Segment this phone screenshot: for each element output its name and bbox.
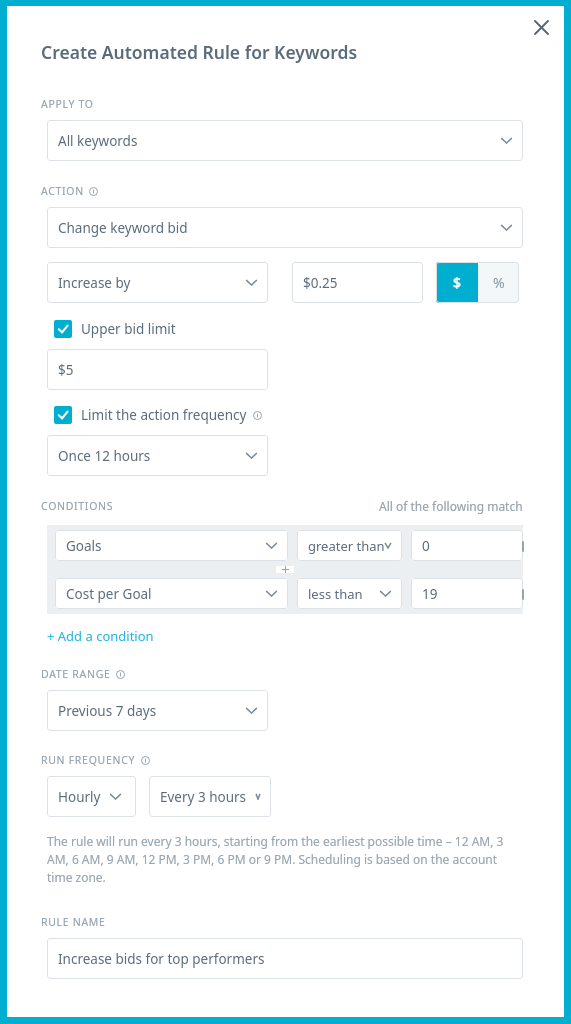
- staticText: Increase bids for top performers: [58, 950, 265, 968]
- button[interactable]: Hourly: [47, 776, 136, 817]
- button[interactable]: 0: [411, 530, 523, 561]
- staticText: 0: [422, 537, 430, 555]
- staticText: The rule will run every 3 hours, startin…: [47, 833, 519, 886]
- staticText: DATE RANGE: [41, 667, 111, 681]
- button[interactable]: All keywords: [47, 120, 523, 161]
- staticText: ACTION: [41, 184, 84, 198]
- staticText: APPLY TO: [41, 97, 94, 111]
- button[interactable]: 19: [411, 578, 523, 609]
- staticText: greater than: [308, 537, 385, 555]
- staticText: CONDITIONS: [41, 499, 114, 513]
- button[interactable]: Close: [528, 15, 554, 40]
- staticText: Hourly: [58, 788, 101, 806]
- staticText: RUN FREQUENCY: [41, 753, 136, 767]
- staticText: $: [453, 273, 462, 292]
- staticText: Every 3 hours: [160, 788, 247, 806]
- button[interactable]: Add condition: [276, 566, 294, 573]
- staticText: $5: [58, 361, 74, 379]
- staticText: 19: [422, 585, 438, 603]
- staticText: %: [493, 273, 505, 292]
- button[interactable]: Increase bids for top performers: [47, 938, 523, 979]
- staticText: Upper bid limit: [81, 320, 176, 338]
- staticText: $0.25: [303, 274, 338, 292]
- staticText: RULE NAME: [41, 915, 106, 929]
- button[interactable]: Increase by: [47, 262, 268, 303]
- button[interactable]: Goals: [55, 530, 288, 561]
- button[interactable]: Every 3 hours: [149, 776, 271, 817]
- staticText: Change keyword bid: [58, 219, 188, 237]
- staticText: Increase by: [58, 274, 131, 292]
- button[interactable]: greater than: [297, 530, 402, 561]
- button[interactable]: Change keyword bid: [47, 207, 523, 248]
- button[interactable]: Limit the action frequency: [54, 406, 262, 424]
- staticText: Create Automated Rule for Keywords: [41, 40, 358, 64]
- staticText: Once 12 hours: [58, 447, 151, 465]
- staticText: + Add a condition: [47, 627, 154, 645]
- button[interactable]: less than: [297, 578, 402, 609]
- staticText: Limit the action frequency: [81, 406, 247, 424]
- staticText: Cost per Goal: [66, 585, 152, 603]
- staticText: less than: [308, 585, 363, 603]
- button[interactable]: $5: [47, 349, 268, 390]
- button[interactable]: + Add a condition: [47, 627, 154, 645]
- staticText: Previous 7 days: [58, 702, 157, 720]
- button[interactable]: %: [478, 262, 519, 303]
- button[interactable]: Cost per Goal: [55, 578, 288, 609]
- staticText: Goals: [66, 537, 102, 555]
- button[interactable]: $: [436, 262, 478, 303]
- button[interactable]: $0.25: [292, 262, 423, 303]
- button[interactable]: Previous 7 days: [47, 690, 268, 731]
- staticText: All keywords: [58, 132, 138, 150]
- button[interactable]: Upper bid limit: [54, 320, 176, 338]
- button[interactable]: Once 12 hours: [47, 435, 268, 476]
- staticText: All of the following match: [379, 498, 523, 514]
